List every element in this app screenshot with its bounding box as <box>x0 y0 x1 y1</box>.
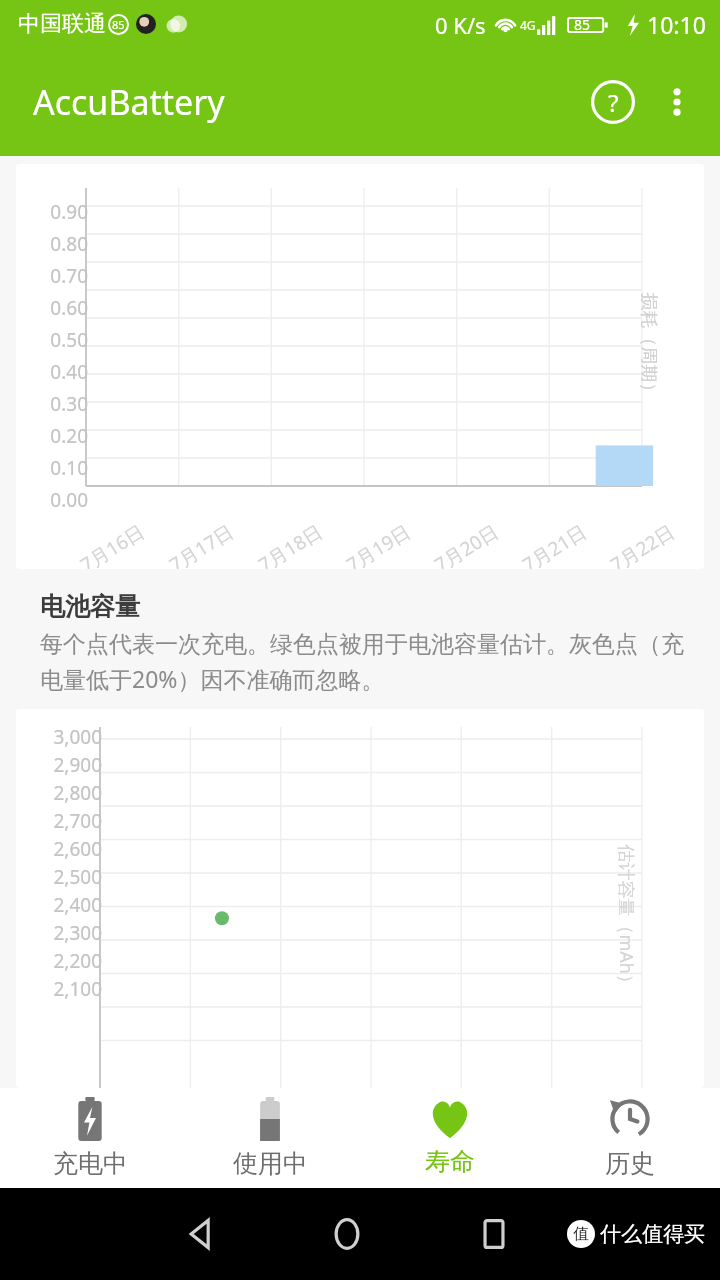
button[interactable]: Home <box>273 1188 420 1280</box>
staticText: ? <box>608 86 619 119</box>
staticText: 估计容量（mAh） <box>613 844 638 992</box>
button[interactable]: More options <box>644 69 710 135</box>
staticText: 0.60 <box>20 295 88 321</box>
staticText: 电池容量 <box>40 591 140 622</box>
staticText: 7月20日 <box>429 518 503 569</box>
staticText: 85 <box>574 15 591 34</box>
button[interactable]: Back <box>126 1188 273 1280</box>
staticText: 0.80 <box>20 231 88 257</box>
staticText: 充电中 <box>53 1148 128 1179</box>
staticText: 0 K/s <box>435 10 486 40</box>
staticText: 历史 <box>605 1148 655 1179</box>
staticText: 0.50 <box>20 327 88 353</box>
staticText: 7月17日 <box>164 518 238 569</box>
staticText: 中国联通 <box>18 10 106 38</box>
staticText: 每个点代表一次充电。绿色点被用于电池容量估计。灰色点（充电量低于20%）因不准确… <box>40 630 684 695</box>
staticText: 值 <box>573 1224 589 1244</box>
staticText: 损耗（周期） <box>636 292 659 400</box>
staticText: 10:10 <box>647 9 706 40</box>
staticText: 2,700 <box>20 808 102 834</box>
staticText: 寿命 <box>425 1146 475 1177</box>
staticText: 7月22日 <box>605 518 679 569</box>
staticText: 7月18日 <box>253 518 327 569</box>
staticText: 2,400 <box>20 892 102 918</box>
button[interactable]: Help <box>582 71 644 133</box>
staticText: 3,000 <box>20 724 102 750</box>
staticText: 0.70 <box>20 263 88 289</box>
staticText: 7月21日 <box>517 518 591 569</box>
button[interactable]: 充电中 <box>0 1088 180 1188</box>
staticText: 什么值得买 <box>600 1221 705 1247</box>
staticText: 7月16日 <box>75 518 149 569</box>
staticText: 0.30 <box>20 391 88 417</box>
staticText: 0.40 <box>20 359 88 385</box>
staticText: 0.10 <box>20 455 88 481</box>
staticText: 2,600 <box>20 836 102 862</box>
staticText: 0.90 <box>20 199 88 225</box>
staticText: 2,100 <box>20 976 102 1002</box>
staticText: 7月19日 <box>341 518 415 569</box>
staticText: 85 <box>112 17 125 32</box>
button[interactable]: 历史 <box>540 1088 720 1188</box>
button[interactable]: Recents <box>420 1188 567 1280</box>
button[interactable]: 使用中 <box>180 1088 360 1188</box>
staticText: 2,200 <box>20 948 102 974</box>
staticText: 2,900 <box>20 752 102 778</box>
button[interactable]: 寿命 <box>360 1088 540 1188</box>
staticText: 使用中 <box>233 1148 308 1179</box>
staticText: 0.00 <box>20 487 88 513</box>
staticText: AccuBattery <box>33 79 225 125</box>
staticText: 2,300 <box>20 920 102 946</box>
staticText: 0.20 <box>20 423 88 449</box>
staticText: 2,800 <box>20 780 102 806</box>
staticText: 4G <box>520 17 536 33</box>
staticText: 2,500 <box>20 864 102 890</box>
